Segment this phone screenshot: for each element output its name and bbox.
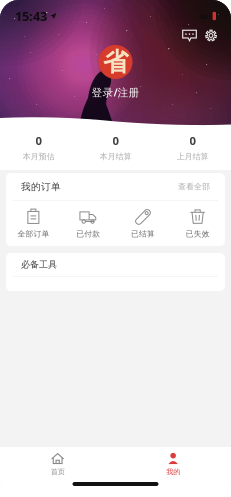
button[interactable]: 查看全部 — [178, 182, 210, 192]
staticText: 登录/注册 — [91, 85, 139, 99]
button[interactable]: 登录/注册 — [91, 85, 139, 99]
staticText: 必备工具 — [21, 259, 57, 270]
staticText: 我的 — [166, 467, 180, 476]
staticText: 上月结算 — [176, 151, 208, 162]
staticText: 0 — [35, 133, 41, 148]
button[interactable]: 已付款 — [61, 201, 116, 246]
button[interactable]: 已结算 — [115, 201, 170, 246]
staticText: 本月结算 — [99, 151, 131, 162]
staticText: 0 — [189, 133, 195, 148]
button[interactable]: Avatar — [98, 45, 132, 79]
button[interactable]: 我的 — [115, 450, 231, 478]
staticText: 已付款 — [76, 229, 100, 239]
staticText: 首页 — [51, 467, 65, 476]
button[interactable]: 已失效 — [170, 201, 225, 246]
button[interactable]: Messages — [182, 30, 197, 41]
staticText: 查看全部 — [178, 182, 210, 192]
staticText: 已结算 — [131, 229, 155, 239]
staticText: 我的订单 — [21, 181, 61, 193]
staticText: 已失效 — [186, 229, 210, 239]
button[interactable]: 全部订单 — [6, 201, 61, 246]
button[interactable]: Settings — [205, 29, 217, 41]
staticText: 0 — [112, 133, 118, 148]
staticText: 全部订单 — [17, 229, 49, 239]
staticText: 省 — [103, 46, 128, 78]
staticText: 15:43 — [15, 7, 47, 25]
button[interactable]: 首页 — [0, 450, 115, 478]
staticText: 本月预估 — [22, 151, 54, 162]
